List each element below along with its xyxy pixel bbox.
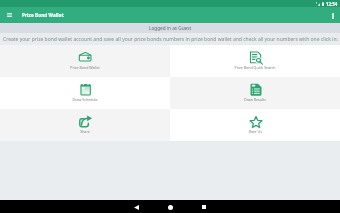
button[interactable]: Draw Results <box>170 77 340 109</box>
button[interactable]: Back <box>130 201 142 213</box>
staticText: Share <box>80 129 90 134</box>
staticText: Draw Results <box>244 97 266 102</box>
button[interactable]: Rate Us <box>170 109 340 141</box>
button[interactable]: Recent apps <box>198 201 210 213</box>
staticText: Prize Bond Wallet <box>70 65 100 70</box>
button[interactable]: Prize Bond Quick Search <box>170 45 340 77</box>
staticText: Prize Bond Quick Search <box>234 65 276 70</box>
staticText: Draw Schedule <box>72 97 98 102</box>
button[interactable]: Share <box>0 109 170 141</box>
staticText: Prize Bond Wallet <box>22 12 64 18</box>
staticText: Rate Us <box>249 129 262 134</box>
staticText: Logged in as Guest <box>149 25 192 31</box>
button[interactable]: Prize Bond Wallet <box>0 45 170 77</box>
button[interactable]: More options <box>325 8 340 23</box>
button[interactable]: Home <box>164 201 176 213</box>
staticText: Create your prize bond wallet account an… <box>3 36 338 43</box>
staticText: 12:54 <box>326 1 338 7</box>
button[interactable]: Open navigation drawer <box>2 7 17 22</box>
button[interactable]: Draw Schedule <box>0 77 170 109</box>
